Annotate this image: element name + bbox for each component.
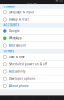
button[interactable]: Add account [0,42,64,49]
staticText: Backup & reset [9,18,29,21]
button[interactable]: Developer options [0,75,64,82]
button[interactable]: About phone [0,82,64,89]
staticText: About phone [9,84,29,88]
staticText: Add account [9,44,26,47]
staticText: COMMON [3,5,15,8]
staticText: ACCOUNTS [3,23,18,27]
staticText: Developer options [9,77,35,80]
button[interactable]: Accessibility [0,68,64,75]
staticText: Accessibility [9,70,25,73]
button[interactable]: Language & input [0,9,64,16]
button[interactable]: Date & time [0,54,64,60]
staticText: WhatsApp [9,36,22,40]
staticText: Scheduled power on & off [9,62,47,66]
staticText: ALL SETTINGS [27,2,37,4]
button[interactable]: Scheduled power on & off [0,61,64,68]
button[interactable]: Backup & reset [0,16,64,23]
button[interactable]: WhatsApp [0,35,64,42]
staticText: Language & input [9,10,34,14]
staticText: OTHERS [3,49,13,53]
staticText: Google [9,29,20,33]
staticText: Date & time [9,55,25,59]
staticText: 12:30 [59,0,63,2]
button[interactable]: Google [0,28,64,34]
